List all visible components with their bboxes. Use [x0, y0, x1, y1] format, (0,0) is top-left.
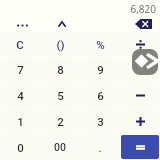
button[interactable]: ()	[41, 33, 79, 56]
staticText: 6,820	[126, 2, 156, 16]
staticText: 3	[97, 115, 104, 128]
button[interactable]: Minus	[121, 83, 159, 107]
button[interactable]: 7	[1, 58, 39, 81]
button[interactable]: Equals	[121, 135, 159, 159]
staticText: 8	[57, 63, 64, 76]
staticText: 00	[54, 141, 66, 153]
staticText: 4	[17, 89, 24, 102]
staticText: 6	[97, 89, 104, 102]
staticText: C	[16, 38, 24, 51]
staticText: 2	[57, 115, 64, 128]
button[interactable]: 3	[81, 109, 119, 133]
button[interactable]: Collapse	[54, 16, 70, 32]
staticText: %	[96, 38, 105, 51]
button[interactable]: 00	[41, 135, 79, 159]
button[interactable]: Multiply	[121, 58, 159, 81]
staticText: .	[98, 141, 102, 154]
button[interactable]: Backspace	[133, 17, 154, 30]
button[interactable]: C	[1, 33, 39, 56]
button[interactable]: Divide	[121, 33, 159, 56]
button[interactable]: 2	[41, 109, 79, 133]
staticText: 9	[97, 63, 104, 76]
staticText: 1	[17, 115, 24, 128]
staticText: 7	[17, 63, 24, 76]
button[interactable]: 4	[1, 83, 39, 107]
button[interactable]: .	[81, 135, 119, 159]
button[interactable]: 5	[41, 83, 79, 107]
button[interactable]: %	[81, 33, 119, 56]
button[interactable]: 9	[81, 58, 119, 81]
button[interactable]: 0	[1, 135, 39, 159]
staticText: 0	[17, 141, 24, 154]
staticText: ()	[56, 38, 65, 51]
button[interactable]: 1	[1, 109, 39, 133]
button[interactable]: 6	[81, 83, 119, 107]
button[interactable]: Plus	[121, 109, 159, 133]
button[interactable]: Expand	[132, 49, 158, 75]
staticText: 5	[57, 89, 64, 102]
button[interactable]: More options	[11, 17, 33, 34]
button[interactable]: 8	[41, 58, 79, 81]
